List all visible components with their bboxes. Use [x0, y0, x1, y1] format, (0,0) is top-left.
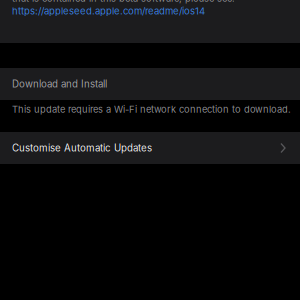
button[interactable]: Customise Automatic Updates: [0, 132, 300, 164]
staticText: Download and Install: [12, 78, 107, 90]
button[interactable]: Download and Install: [0, 68, 300, 100]
button[interactable]: https://appleseed.apple.com/readme/ios14: [0, 4, 300, 18]
staticText: https://appleseed.apple.com/readme/ios14: [12, 5, 205, 17]
staticText: that is contained in this beta software,…: [12, 0, 235, 4]
staticText: This update requires a Wi-Fi network con…: [12, 104, 291, 115]
staticText: Customise Automatic Updates: [12, 142, 152, 154]
